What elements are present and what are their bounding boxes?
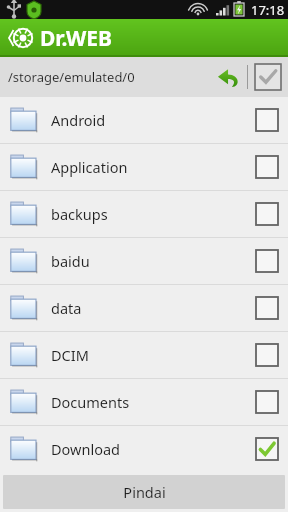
- button[interactable]: Unchecked backups: [246, 191, 288, 237]
- button[interactable]: Up one level: [211, 59, 247, 95]
- button[interactable]: Back: [4, 21, 38, 55]
- button[interactable]: baidu: [0, 238, 288, 284]
- staticText: Dr.WEB: [40, 24, 113, 53]
- staticText: Documents: [51, 392, 246, 412]
- staticText: Android: [51, 110, 246, 130]
- staticText: Application: [51, 157, 246, 177]
- staticText: /storage/emulated/0: [8, 68, 211, 86]
- staticText: backups: [51, 204, 246, 224]
- button[interactable]: backups: [0, 191, 288, 237]
- button[interactable]: data: [0, 285, 288, 331]
- button[interactable]: Application: [0, 144, 288, 190]
- button[interactable]: Unchecked Documents: [246, 379, 288, 425]
- button[interactable]: Unchecked Application: [246, 144, 288, 190]
- button[interactable]: Unchecked DCIM: [246, 332, 288, 378]
- staticText: Pindai: [123, 482, 166, 502]
- button[interactable]: DCIM: [0, 332, 288, 378]
- staticText: baidu: [51, 251, 246, 271]
- button[interactable]: Select all: [248, 57, 288, 97]
- button[interactable]: Unchecked data: [246, 285, 288, 331]
- staticText: data: [51, 298, 246, 318]
- staticText: 17:18: [251, 1, 285, 19]
- staticText: DCIM: [51, 345, 246, 365]
- button[interactable]: Unchecked baidu: [246, 238, 288, 284]
- button[interactable]: Unchecked Android: [246, 97, 288, 143]
- button[interactable]: Documents: [0, 379, 288, 425]
- button[interactable]: Download: [0, 426, 288, 472]
- staticText: Download: [51, 439, 246, 459]
- button[interactable]: Checked Download: [246, 426, 288, 472]
- button[interactable]: Android: [0, 97, 288, 143]
- button[interactable]: Pindai: [3, 475, 285, 509]
